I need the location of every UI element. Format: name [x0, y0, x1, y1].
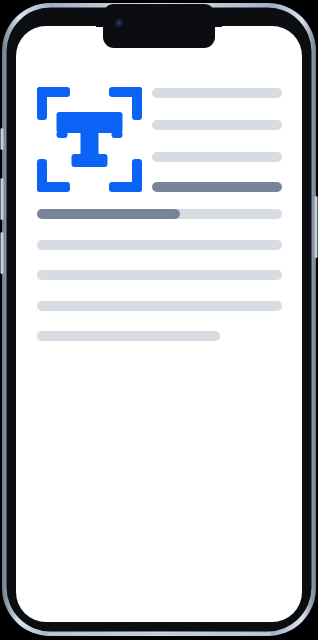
button[interactable]: Recognized text heading: [152, 86, 284, 194]
button[interactable]: Scan text: [36, 86, 144, 194]
button[interactable]: Recognized text body: [36, 204, 284, 346]
